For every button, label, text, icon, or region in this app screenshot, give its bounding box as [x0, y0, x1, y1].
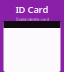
- staticText: ID Card: [15, 3, 48, 15]
- staticText: Digital identity card: [15, 16, 48, 22]
